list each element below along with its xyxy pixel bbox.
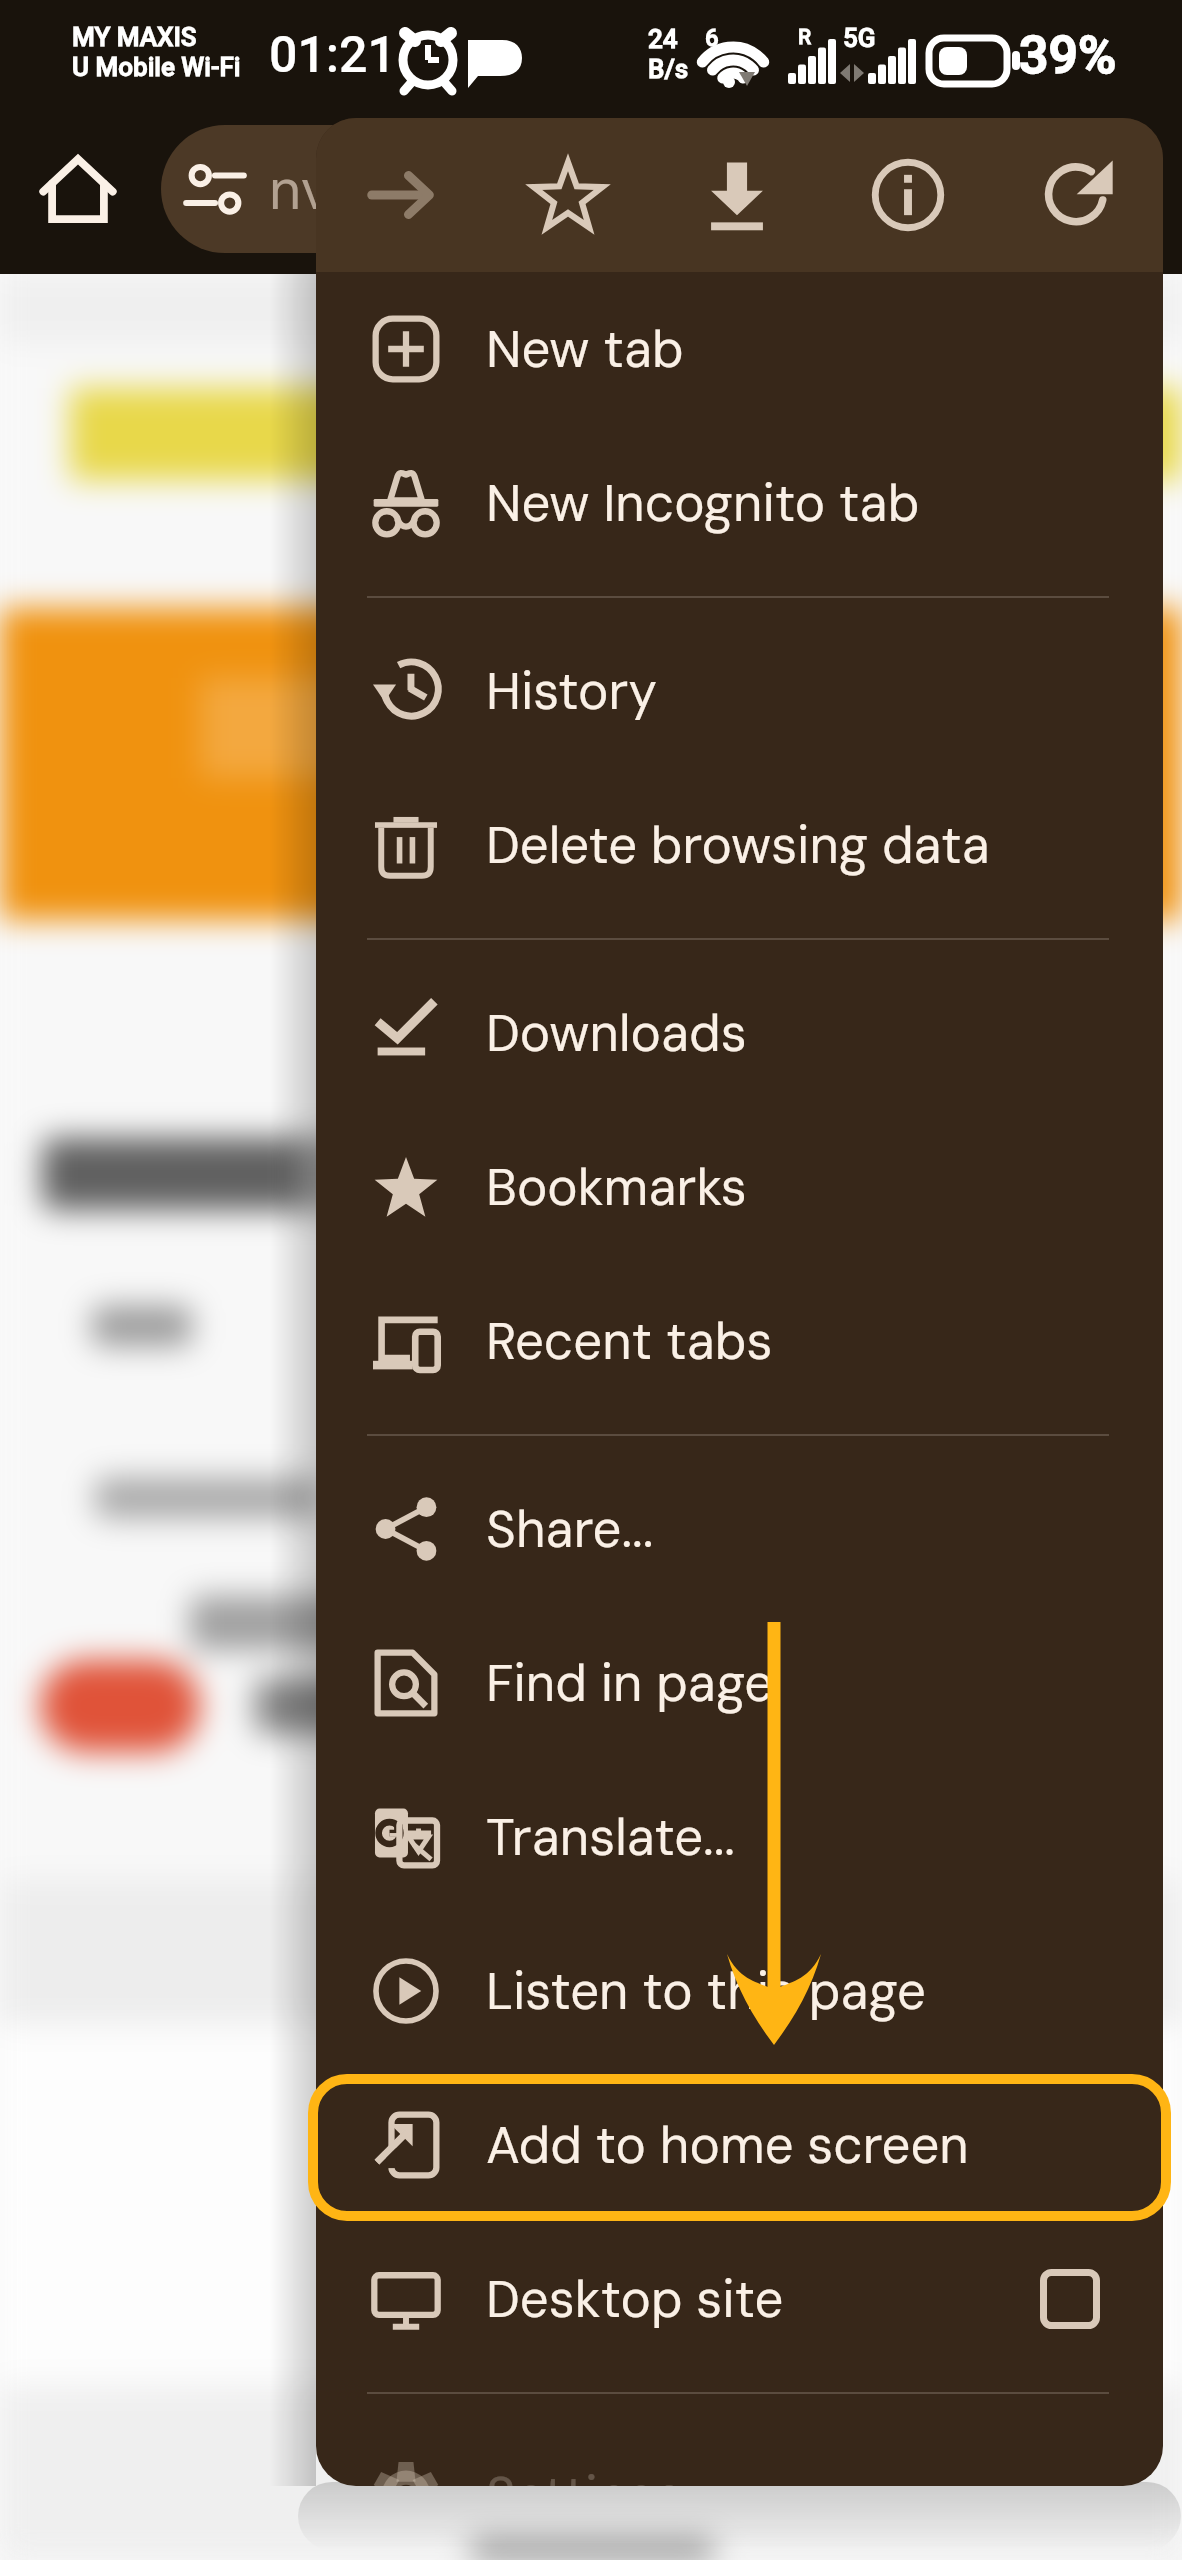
staticText: 24 (648, 24, 678, 54)
button[interactable]: Add to home screen (316, 2068, 1163, 2222)
button[interactable]: Page info (853, 118, 963, 272)
staticText: U Mobile Wi-Fi (72, 52, 241, 82)
staticText: Add to home screen (486, 2112, 969, 2178)
button[interactable]: Delete browsing data (316, 768, 1163, 922)
staticText: New tab (486, 316, 684, 382)
staticText: 5G (843, 23, 876, 53)
button[interactable]: Settings (316, 2418, 1163, 2486)
staticText: B/s (648, 54, 689, 84)
button[interactable]: New Incognito tab (316, 426, 1163, 580)
staticText: Desktop site (486, 2266, 784, 2332)
staticText: R (798, 25, 812, 50)
button[interactable]: Download page (682, 118, 792, 272)
staticText: Downloads (486, 1000, 747, 1066)
button[interactable]: Reload (1026, 118, 1136, 272)
staticText: Delete browsing data (486, 812, 990, 878)
button[interactable]: nv (161, 125, 921, 253)
staticText: Settings (486, 2462, 683, 2486)
staticText: nv (269, 153, 332, 226)
staticText: Listen to this page (486, 1958, 926, 2024)
staticText: MY MAXIS (72, 22, 197, 52)
button[interactable]: Translate... (316, 1760, 1163, 1914)
button[interactable]: Forward (347, 118, 457, 272)
staticText: Translate... (486, 1804, 735, 1870)
staticText: Recent tabs (486, 1308, 773, 1374)
staticText: Find in page (486, 1650, 774, 1716)
button[interactable]: Home (18, 128, 138, 248)
staticText: Share... (486, 1496, 654, 1562)
staticText: 6 (705, 24, 719, 52)
staticText: 01:21 (269, 26, 396, 85)
button[interactable]: Desktop site (316, 2222, 1163, 2376)
button[interactable]: History (316, 614, 1163, 768)
button[interactable]: Listen to this page (316, 1914, 1163, 2068)
button[interactable]: Bookmark this page (513, 118, 623, 272)
staticText: New Incognito tab (486, 470, 920, 536)
button[interactable]: Recent tabs (316, 1264, 1163, 1418)
button[interactable]: New tab (316, 272, 1163, 426)
staticText: 39% (1019, 25, 1117, 86)
staticText: Bookmarks (486, 1154, 747, 1220)
staticText: History (486, 658, 657, 724)
button[interactable]: Downloads (316, 956, 1163, 1110)
button[interactable]: Share... (316, 1452, 1163, 1606)
button[interactable]: Bookmarks (316, 1110, 1163, 1264)
button[interactable]: Find in page (316, 1606, 1163, 1760)
